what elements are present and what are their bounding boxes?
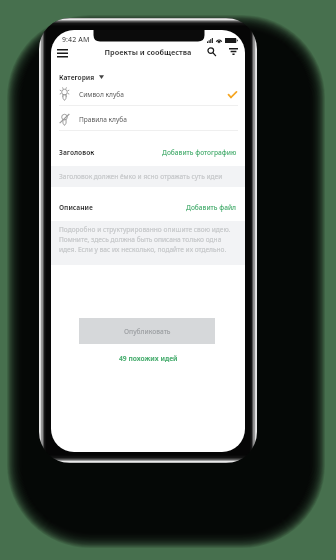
staticText: 9:42 AM: [62, 35, 90, 45]
staticText: Заголовок: [59, 148, 95, 157]
staticText: Категория: [59, 73, 95, 82]
staticText: Проекты и сообщества: [51, 47, 245, 57]
button[interactable]: Категория: [59, 71, 104, 83]
staticText: Заголовок должен ёмко и ясно отражать су…: [59, 172, 223, 181]
button[interactable]: Filter: [225, 43, 241, 59]
button[interactable]: Опубликовать: [79, 318, 215, 344]
staticText: Опубликовать: [124, 327, 171, 336]
button[interactable]: Подоробно и структурированно опишите сво…: [51, 221, 245, 265]
staticText: Символ клуба: [79, 90, 124, 99]
button[interactable]: Добавить фотографию: [162, 148, 237, 157]
staticText: Правила клуба: [79, 115, 127, 124]
button[interactable]: Символ клуба: [59, 83, 237, 105]
button[interactable]: 49 похожих идей: [117, 352, 180, 365]
button[interactable]: Добавить файл: [186, 203, 237, 212]
staticText: Подоробно и структурированно опишите сво…: [59, 225, 237, 254]
button[interactable]: Заголовок должен ёмко и ясно отражать су…: [51, 166, 245, 187]
button[interactable]: Menu: [54, 44, 70, 60]
staticText: Описание: [59, 203, 93, 212]
button[interactable]: Search: [203, 43, 219, 59]
button[interactable]: Правила клуба: [59, 108, 237, 130]
